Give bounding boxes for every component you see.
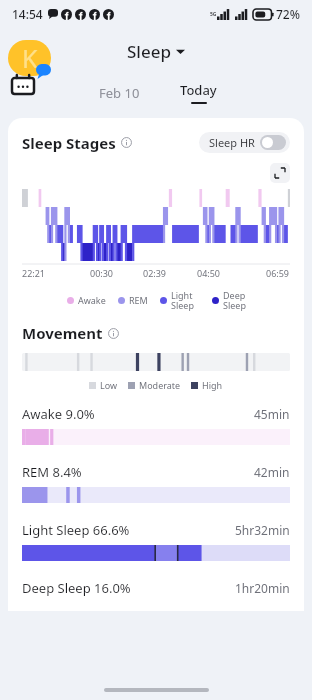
button[interactable]: Expand chart	[270, 163, 290, 183]
staticText: 22:21	[22, 267, 46, 279]
button[interactable]: REM 8.4%	[22, 463, 290, 503]
staticText: Moderate	[139, 379, 181, 391]
staticText: REM	[129, 294, 148, 306]
staticText: Sleep Stages	[22, 133, 116, 153]
staticText: K	[22, 41, 38, 75]
button[interactable]: Today	[170, 77, 227, 108]
staticText: Awake 9.0%	[22, 405, 95, 423]
staticText: 72%	[276, 6, 300, 22]
staticText: 04:50	[197, 267, 221, 279]
button[interactable]: Sleep	[119, 36, 193, 67]
staticText: Light Sleep 66.6%	[22, 521, 130, 539]
staticText: 5G	[210, 11, 217, 18]
staticText: Awake	[78, 294, 106, 306]
staticText: Movement	[22, 323, 103, 343]
staticText: 1hr20min	[235, 580, 290, 596]
staticText: Deep Sleep	[223, 289, 246, 311]
staticText: 06:59	[266, 267, 290, 279]
staticText: 14:54	[12, 6, 43, 22]
staticText: Feb 10	[99, 84, 140, 102]
staticText: 42min	[254, 464, 290, 480]
staticText: Deep Sleep 16.0%	[22, 579, 131, 597]
button[interactable]: Sleep HR	[199, 132, 290, 153]
staticText: Sleep	[127, 40, 171, 63]
staticText: 5hr32min	[235, 522, 290, 538]
button[interactable]: Light Sleep 66.6%	[22, 521, 290, 561]
button[interactable]: Calendar	[12, 75, 34, 94]
staticText: High	[202, 379, 223, 391]
staticText: Today	[180, 81, 217, 99]
staticText: 45min	[254, 406, 290, 422]
staticText: Light Sleep	[171, 289, 194, 311]
staticText: REM 8.4%	[22, 463, 82, 481]
staticText: Sleep HR	[209, 135, 255, 150]
staticText: 00:30	[90, 267, 114, 279]
staticText: Low	[100, 379, 118, 391]
staticText: 02:39	[143, 267, 167, 279]
button[interactable]: Feb 10	[85, 78, 154, 108]
button[interactable]: Awake 9.0%	[22, 405, 290, 445]
button[interactable]: Profile	[8, 40, 51, 76]
